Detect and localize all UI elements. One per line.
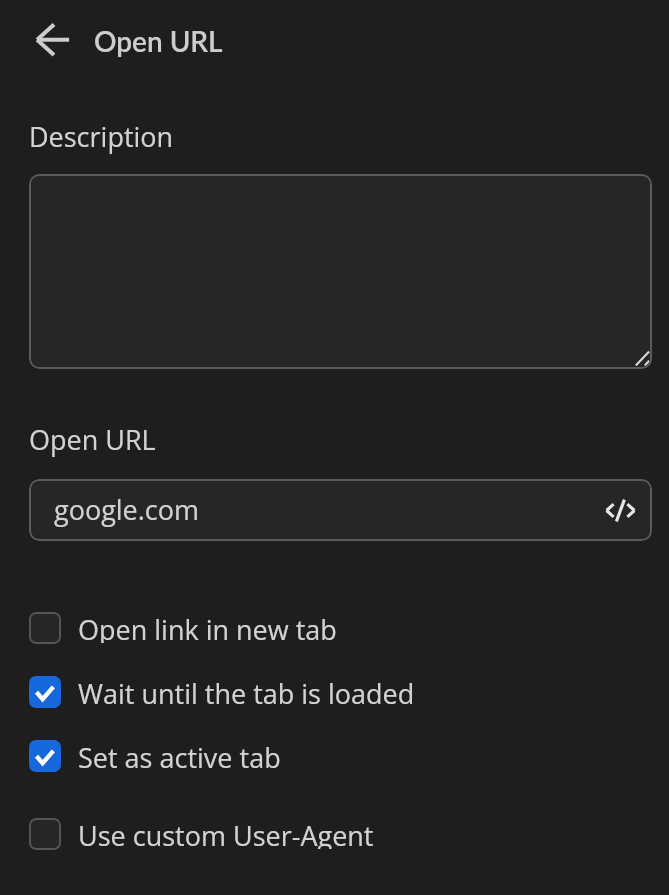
staticText: Use custom User-Agent	[78, 817, 374, 849]
button[interactable]: Description	[29, 174, 652, 369]
button[interactable]: google.com	[29, 479, 652, 541]
staticText: Open URL	[94, 24, 223, 58]
staticText: Set as active tab	[78, 739, 281, 771]
staticText: Description	[29, 118, 174, 155]
button[interactable]: Use custom User-Agent	[29, 818, 373, 850]
staticText: google.com	[54, 491, 200, 528]
button[interactable]: Insert code snippet	[598, 488, 642, 532]
button[interactable]: Set as active tab	[29, 740, 280, 772]
staticText: Wait until the tab is loaded	[78, 675, 415, 707]
staticText: Open URL	[29, 421, 156, 458]
button[interactable]: Back	[29, 16, 77, 64]
staticText: Open link in new tab	[78, 611, 337, 643]
button[interactable]: Wait until the tab is loaded	[29, 676, 412, 708]
button[interactable]: Open link in new tab	[29, 612, 335, 644]
